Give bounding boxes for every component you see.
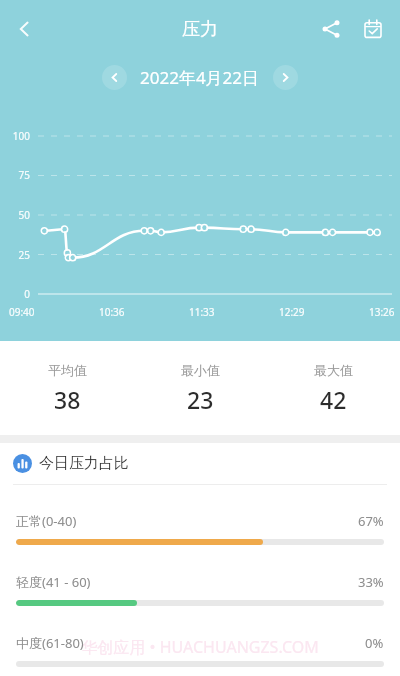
staticText: 0	[0, 287, 30, 301]
staticText: 50	[0, 208, 30, 222]
staticText: 23	[187, 384, 214, 415]
button[interactable]: Back	[2, 7, 46, 51]
staticText: 33%	[358, 573, 384, 591]
staticText: 压力	[182, 18, 218, 41]
staticText: 2022年4月22日	[140, 66, 260, 89]
staticText: 正常(0-40)	[16, 512, 77, 530]
staticText: 38	[54, 384, 81, 415]
staticText: 67%	[358, 512, 384, 530]
button[interactable]: 轻度(41 - 60)	[0, 573, 400, 606]
staticText: 10:36	[99, 305, 125, 319]
staticText: 12:29	[279, 305, 305, 319]
staticText: 华创应用 • HUACHUANGZS.COM	[0, 636, 400, 658]
button[interactable]: Previous day	[102, 65, 127, 90]
button[interactable]: 中度(61-80)	[0, 634, 400, 667]
staticText: 平均值	[48, 362, 87, 378]
staticText: 轻度(41 - 60)	[16, 573, 91, 591]
staticText: 今日压力占比	[39, 454, 129, 473]
staticText: 中度(61-80)	[16, 634, 84, 652]
staticText: 100	[0, 129, 30, 143]
staticText: 75	[0, 168, 30, 182]
button[interactable]: Share	[310, 8, 352, 50]
staticText: 最小值	[181, 362, 220, 378]
button[interactable]: Select date	[352, 8, 394, 50]
staticText: 11:33	[189, 305, 215, 319]
staticText: 最大值	[314, 362, 353, 378]
staticText: 25	[0, 248, 30, 262]
button[interactable]: 正常(0-40)	[0, 512, 400, 545]
staticText: 0%	[365, 634, 384, 652]
staticText: 42	[320, 384, 347, 415]
staticText: 09:40	[9, 305, 35, 319]
staticText: 13:26	[369, 305, 395, 319]
button[interactable]: Next day	[273, 65, 298, 90]
